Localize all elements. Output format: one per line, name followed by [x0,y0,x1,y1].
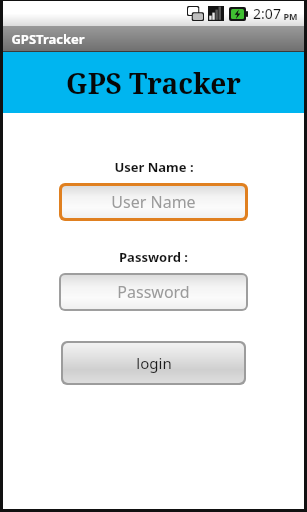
staticText: login [136,353,172,373]
staticText: Password [117,281,190,303]
staticText: User Name [111,191,196,213]
staticText: Password : [119,248,188,266]
button[interactable]: Password [59,273,248,311]
staticText: User Name : [114,158,194,176]
button[interactable]: User Name [59,183,248,221]
button[interactable]: login [61,341,246,385]
staticText: PM [283,10,298,22]
staticText: GPS Tracker [66,64,241,102]
staticText: GPSTracker [11,30,85,48]
staticText: 2:07 [253,4,281,23]
